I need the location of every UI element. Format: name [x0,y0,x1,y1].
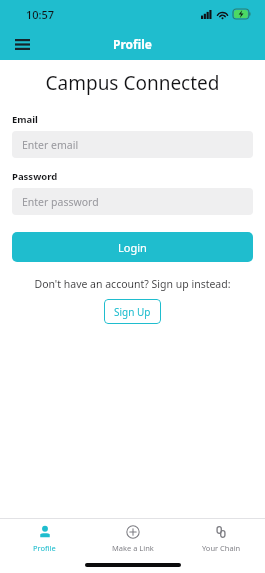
staticText: Password [12,170,58,183]
button[interactable]: Make a Link [89,519,177,559]
staticText: Your Chain [202,543,241,553]
staticText: Enter email [22,138,79,152]
staticText: Enter password [22,195,99,209]
staticText: 10:57 [26,7,55,22]
staticText: Make a Link [112,543,154,553]
staticText: Campus Connected [0,70,265,96]
staticText: Email [12,113,38,126]
staticText: Login [118,240,147,255]
button[interactable]: Enter email [12,131,253,158]
button[interactable]: Login [12,232,253,262]
staticText: Profile [33,543,56,553]
button[interactable]: Enter password [12,188,253,215]
button[interactable]: Profile [0,519,89,559]
button[interactable]: Sign Up [104,299,161,324]
staticText: Sign Up [114,305,151,319]
button[interactable]: Your Chain [177,519,265,559]
staticText: Profile [113,36,153,52]
button[interactable]: Open navigation menu [8,30,36,58]
staticText: Don't have an account? Sign up instead: [0,277,265,291]
